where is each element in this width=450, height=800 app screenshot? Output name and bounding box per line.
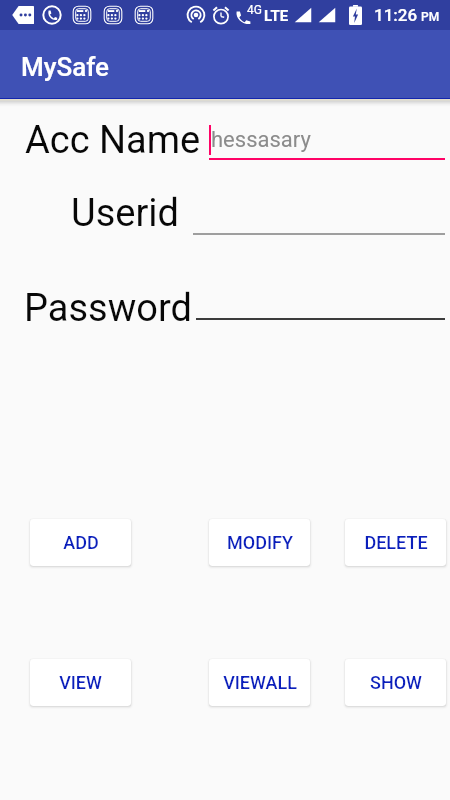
staticText: MODIFY: [227, 532, 293, 553]
button[interactable]: VIEW: [30, 659, 131, 706]
staticText: Password: [24, 286, 192, 331]
staticText: VIEW: [59, 672, 102, 693]
staticText: LTE: [264, 7, 289, 25]
staticText: hessasary: [211, 127, 311, 153]
button[interactable]: MODIFY: [209, 519, 310, 566]
button[interactable]: User id input: [193, 196, 445, 234]
staticText: SHOW: [370, 672, 422, 693]
staticText: PM: [421, 10, 440, 24]
button[interactable]: SHOW: [345, 659, 446, 706]
staticText: ADD: [63, 532, 99, 553]
staticText: 4G: [247, 3, 262, 17]
staticText: Userid: [71, 191, 179, 236]
staticText: Acc Name: [25, 118, 201, 163]
button[interactable]: VIEWALL: [209, 659, 310, 706]
staticText: MySafe: [21, 52, 110, 82]
button[interactable]: ADD: [30, 519, 131, 566]
staticText: VIEWALL: [223, 672, 297, 693]
staticText: 11:26: [374, 5, 418, 25]
button[interactable]: Account name input: [208, 123, 445, 160]
button[interactable]: DELETE: [345, 519, 446, 566]
staticText: DELETE: [364, 532, 428, 553]
